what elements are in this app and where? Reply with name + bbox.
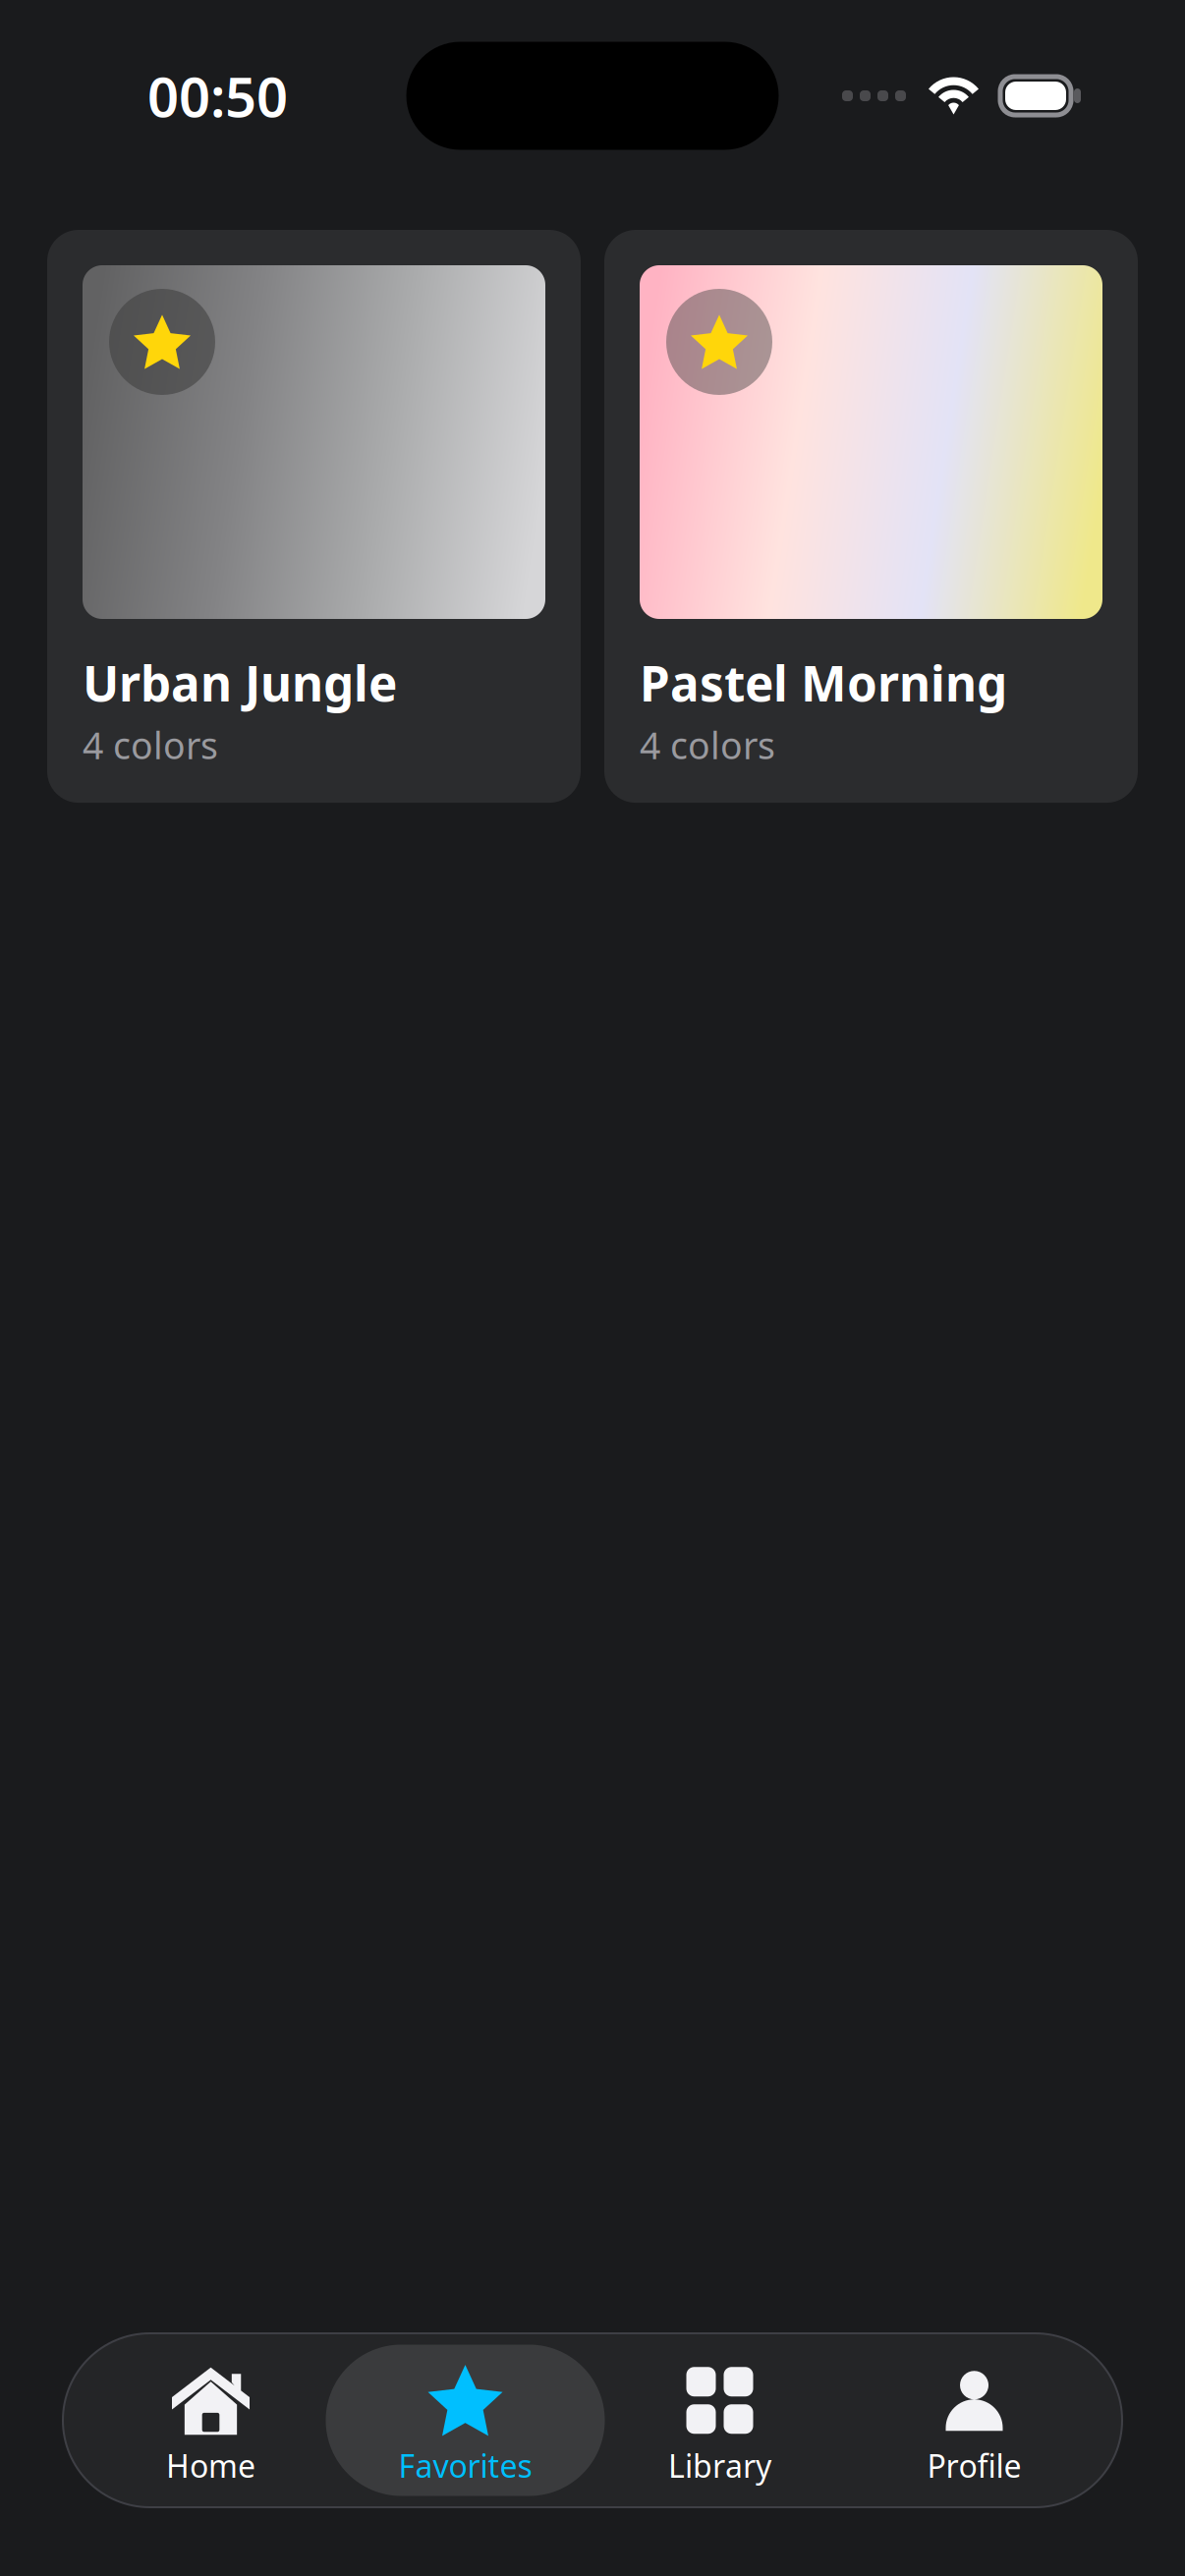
staticText: Favorites [398,2445,532,2486]
button[interactable]: Library [592,2333,847,2507]
staticText: Pastel Morning [640,650,1007,715]
button[interactable]: Favorites [338,2333,592,2507]
staticText: Profile [927,2445,1021,2486]
staticText: 00:50 [147,59,288,132]
staticText: 4 colors [640,721,775,769]
staticText: Library [668,2445,771,2486]
staticText: 4 colors [83,721,218,769]
button[interactable]: Remove Pastel Morning from favorites [666,289,772,395]
button[interactable]: Profile [847,2333,1101,2507]
button[interactable]: Remove Urban Jungle from favorites [109,289,215,395]
button[interactable]: Urban Jungle [47,230,581,803]
staticText: Home [166,2445,255,2486]
button[interactable]: Pastel Morning [604,230,1138,803]
staticText: Urban Jungle [83,650,397,715]
button[interactable]: Home [84,2333,338,2507]
